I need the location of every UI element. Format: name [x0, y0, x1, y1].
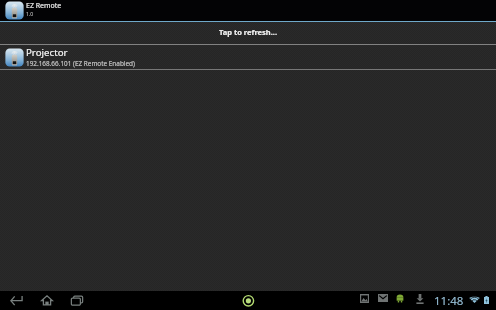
button[interactable]: EZ Remote	[0, 0, 496, 21]
staticText: EZ Remote	[26, 1, 62, 11]
button[interactable]: Home	[37, 291, 57, 310]
staticText: 11:48	[434, 293, 464, 309]
staticText: 192.168.66.101 (EZ Remote Enabled)	[26, 59, 135, 68]
staticText: Tap to refresh...	[219, 27, 278, 37]
button[interactable]: Projector	[0, 45, 496, 69]
button[interactable]: Recent apps	[67, 291, 87, 310]
staticText: 1.0	[26, 11, 34, 18]
button[interactable]: Notifications	[238, 291, 258, 310]
button[interactable]: Back	[6, 291, 26, 310]
button[interactable]: Tap to refresh...	[0, 22, 496, 44]
staticText: Projector	[26, 46, 68, 59]
